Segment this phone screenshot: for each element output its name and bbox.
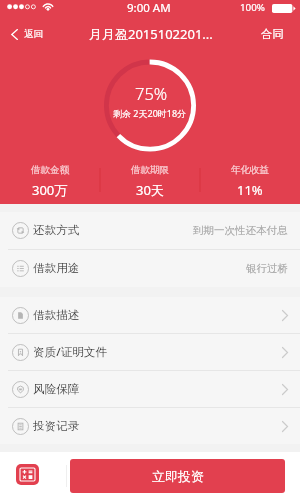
staticText: 到期一次性还本付息 (193, 224, 288, 237)
button[interactable]: 资质/证明文件 (0, 334, 300, 370)
staticText: 年化收益 (231, 164, 269, 176)
staticText: 30天 (136, 181, 164, 199)
staticText: 借款期限 (131, 164, 169, 176)
staticText: 借款金额 (31, 164, 69, 176)
staticText: 75% (135, 82, 168, 104)
staticText: 9:00 AM (127, 0, 171, 16)
button[interactable]: 还款方式 (0, 212, 300, 249)
staticText: 风险保障 (33, 382, 80, 397)
staticText: 借款描述 (33, 308, 80, 323)
staticText: 银行过桥 (246, 262, 288, 275)
staticText: 100% (240, 1, 265, 14)
button[interactable]: 风险保障 (0, 371, 300, 407)
staticText: 投资记录 (33, 419, 80, 434)
button[interactable]: 借款用途 (0, 250, 300, 287)
staticText: 还款方式 (33, 223, 80, 238)
staticText: 11% (237, 181, 263, 199)
button[interactable]: 立即投资 (70, 459, 285, 493)
button[interactable]: 借款描述 (0, 297, 300, 333)
staticText: 资质/证明文件 (33, 344, 108, 360)
staticText: 借款用途 (33, 261, 80, 276)
staticText: 剩余 2天20时18分 (113, 107, 187, 119)
staticText: 合同 (261, 27, 284, 41)
staticText: 返回 (24, 28, 43, 40)
button[interactable]: 计算器 (0, 452, 60, 500)
button[interactable]: 返回 (0, 18, 51, 50)
staticText: 300万 (32, 181, 68, 199)
button[interactable]: 合同 (245, 18, 300, 50)
staticText: 月月盈2015102201... (89, 25, 213, 43)
button[interactable]: 投资记录 (0, 408, 300, 444)
staticText: 立即投资 (152, 468, 204, 484)
